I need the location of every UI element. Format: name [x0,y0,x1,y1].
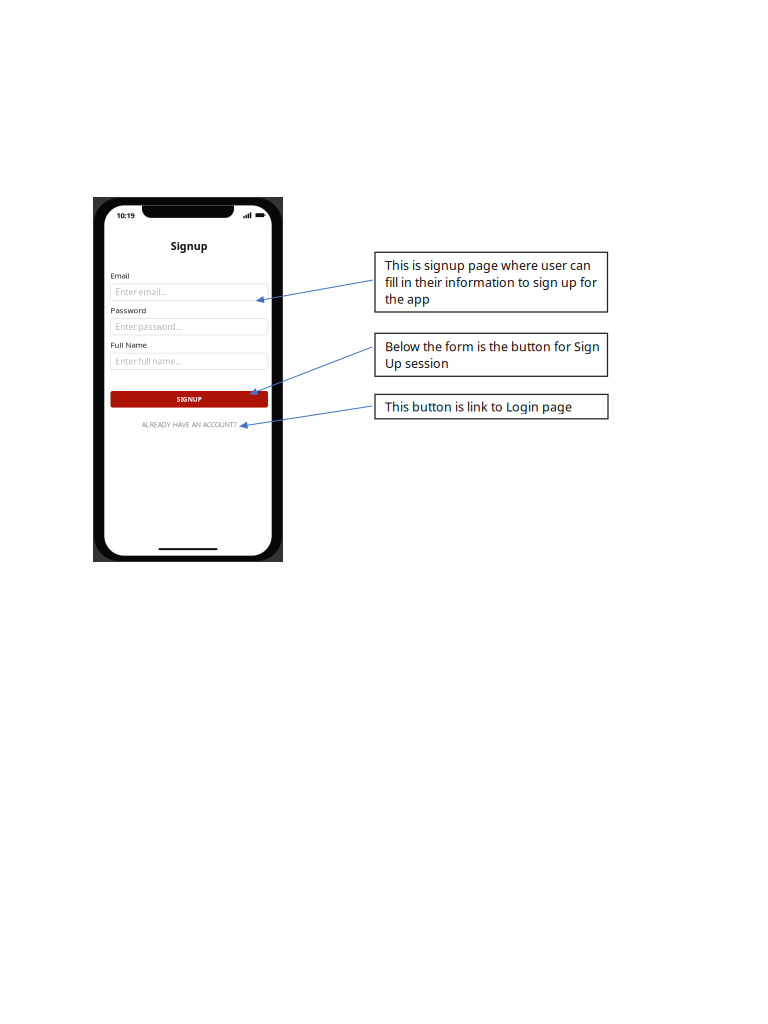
staticText: Up session [385,355,449,372]
staticText: Email [110,270,129,281]
staticText: ALREADY HAVE AN ACCOUNT? [142,420,237,429]
button[interactable]: SIGNUP [110,391,268,408]
staticText: Password [110,305,146,315]
staticText: Enter email... [115,286,166,298]
staticText: Full Name [110,340,146,350]
staticText: Enter full name... [115,356,181,367]
staticText: This is signup page where user can [385,257,591,274]
staticText: Enter password... [115,321,181,332]
staticText: SIGNUP [177,395,202,404]
staticText: the app [385,291,430,307]
staticText: Below the form is the button for Sign [385,338,600,355]
staticText: This button is link to Login page [385,398,572,415]
staticText: 10:19 [116,210,134,220]
staticText: Signup [171,239,208,253]
button[interactable]: ALREADY HAVE AN ACCOUNT? [110,419,268,430]
staticText: fill in their information to sign up for [385,274,597,291]
